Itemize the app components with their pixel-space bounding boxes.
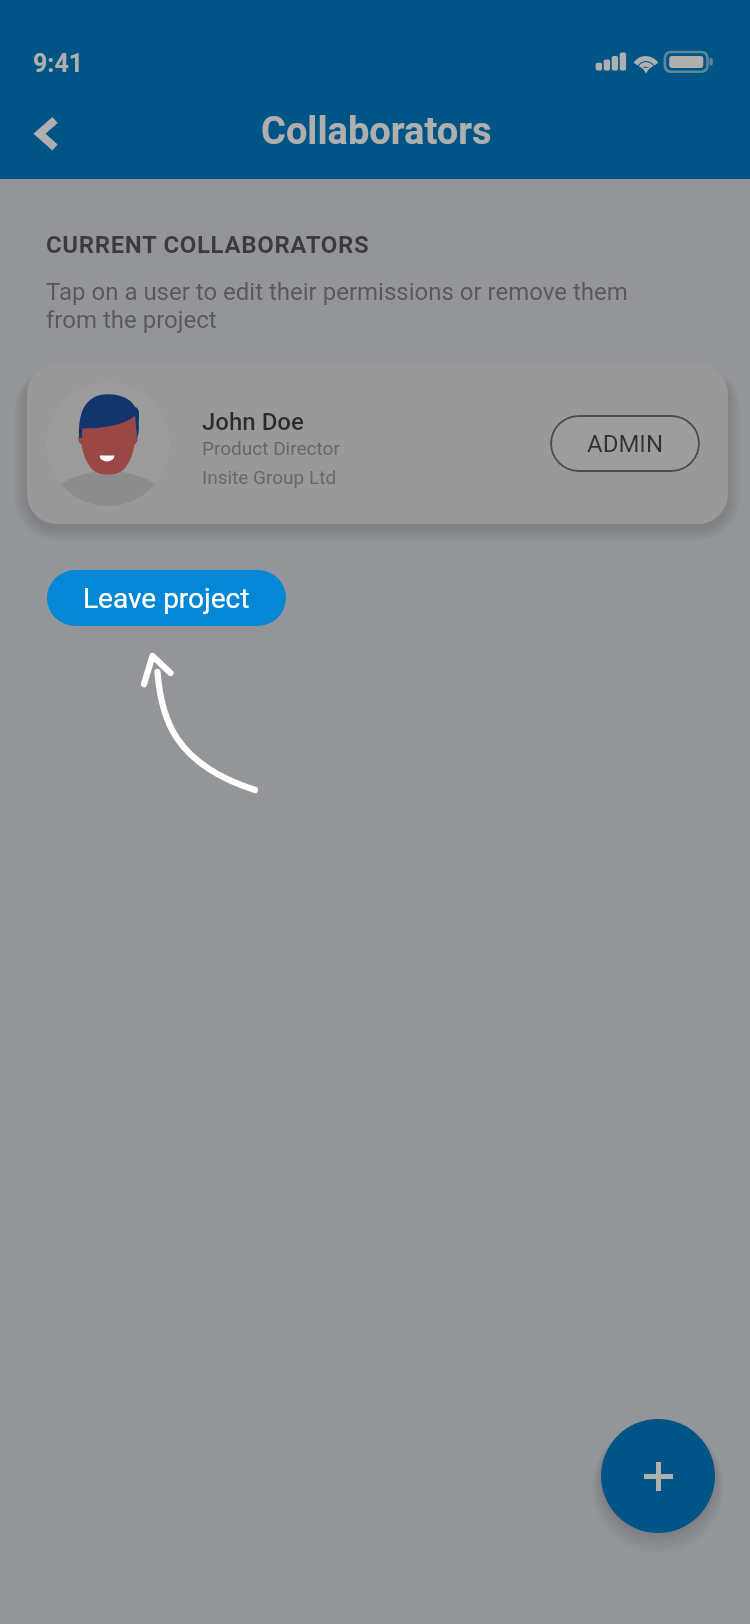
staticText: Leave project (83, 582, 250, 615)
staticText: Insite Group Ltd (202, 466, 337, 488)
staticText: CURRENT COLLABORATORS (46, 231, 370, 259)
staticText: 9:41 (33, 49, 84, 78)
staticText: Tap on a user to edit their permissions … (46, 278, 646, 334)
staticText: Collaborators (261, 109, 492, 154)
button[interactable]: Add collaborator (601, 1419, 715, 1533)
staticText: John Doe (202, 408, 304, 436)
staticText: ADMIN (587, 430, 664, 458)
button[interactable]: Back (6, 100, 86, 168)
button[interactable]: John Doe (27, 364, 728, 524)
button[interactable]: Leave project (47, 570, 286, 626)
button[interactable]: ADMIN (550, 415, 700, 472)
staticText: Product Director (202, 437, 340, 459)
